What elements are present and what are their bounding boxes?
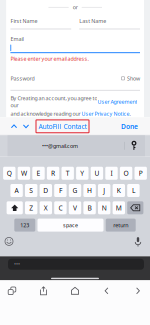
- staticText: D: [43, 186, 48, 195]
- staticText: or: [73, 4, 78, 11]
- staticText: O: [124, 169, 129, 178]
- staticText: Please enter your email address.: [10, 55, 88, 62]
- staticText: W: [21, 169, 27, 178]
- staticText: AutoFill Contact: [38, 122, 86, 131]
- staticText: Password: [10, 75, 34, 82]
- staticText: B: [88, 203, 92, 212]
- staticText: J: [103, 186, 105, 195]
- staticText: R: [51, 169, 55, 178]
- button[interactable]: Z: [25, 201, 37, 214]
- staticText: X: [44, 203, 48, 212]
- button[interactable]: Tabs: [1, 285, 23, 296]
- button[interactable]: Delete: [127, 201, 143, 214]
- button[interactable]: V: [69, 201, 81, 214]
- button[interactable]: Home: [64, 285, 86, 296]
- button[interactable]: L: [127, 184, 140, 197]
- button[interactable]: D: [40, 184, 52, 197]
- button[interactable]: User Privacy Notice: [81, 110, 129, 117]
- staticText: Email: [10, 35, 23, 42]
- staticText: User Agreement: [97, 98, 137, 105]
- button[interactable]: Share: [32, 285, 54, 296]
- button[interactable]: B: [83, 201, 96, 214]
- staticText: return: [113, 222, 128, 229]
- button[interactable]: T: [61, 167, 74, 180]
- button[interactable]: W: [18, 167, 30, 180]
- staticText: Last Name: [79, 17, 106, 24]
- staticText: T: [66, 169, 70, 178]
- staticText: G: [72, 186, 77, 195]
- button[interactable]: •••@gmail.com: [42, 142, 78, 149]
- button[interactable]: R: [47, 167, 59, 180]
- button[interactable]: G: [69, 184, 81, 197]
- button[interactable]: P: [134, 167, 147, 180]
- staticText: I: [110, 169, 112, 178]
- button[interactable]: Back: [95, 285, 117, 296]
- button[interactable]: E: [32, 167, 45, 180]
- staticText: and acknowledge reading our: [10, 110, 81, 117]
- staticText: V: [73, 203, 77, 212]
- button[interactable]: Forward: [127, 285, 149, 296]
- staticText: P: [139, 169, 143, 178]
- button[interactable]: N: [98, 201, 110, 214]
- staticText: Z: [29, 203, 33, 212]
- button[interactable]: User Agreement: [97, 98, 137, 105]
- button[interactable]: Y: [76, 167, 88, 180]
- staticText: space: [63, 222, 78, 229]
- staticText: K: [117, 186, 121, 195]
- button[interactable]: A: [10, 184, 23, 197]
- staticText: M: [116, 203, 122, 212]
- staticText: By Creating an account, you agree to our: [10, 95, 97, 109]
- button[interactable]: space: [37, 219, 103, 232]
- staticText: H: [87, 186, 92, 195]
- button[interactable]: Next field: [20, 119, 32, 133]
- staticText: First Name: [10, 17, 37, 24]
- staticText: Q: [7, 169, 12, 178]
- button[interactable]: Dictation: [131, 236, 145, 247]
- staticText: .: [129, 110, 130, 117]
- staticText: 123: [20, 222, 29, 229]
- staticText: S: [29, 186, 33, 195]
- button[interactable]: Shift: [7, 201, 23, 214]
- button[interactable]: S: [25, 184, 37, 197]
- button[interactable]: C: [54, 201, 67, 214]
- button[interactable]: F: [54, 184, 67, 197]
- button[interactable]: Q: [3, 167, 15, 180]
- staticText: L: [132, 186, 135, 195]
- button[interactable]: •••: [0, 259, 150, 270]
- button[interactable]: Previous field: [8, 119, 20, 133]
- button[interactable]: Emoji keyboard: [2, 236, 16, 247]
- button[interactable]: Show: [121, 75, 140, 82]
- staticText: Done: [121, 122, 138, 131]
- button[interactable]: Passwords: [131, 141, 137, 150]
- staticText: C: [58, 203, 62, 212]
- button[interactable]: 123: [14, 219, 35, 232]
- button[interactable]: X: [40, 201, 52, 214]
- staticText: Y: [80, 169, 84, 178]
- button[interactable]: K: [113, 184, 125, 197]
- staticText: E: [36, 169, 40, 178]
- button[interactable]: J: [98, 184, 110, 197]
- staticText: N: [102, 203, 107, 212]
- button[interactable]: return: [106, 219, 136, 232]
- staticText: A: [15, 186, 19, 195]
- staticText: Show: [127, 75, 140, 82]
- button[interactable]: M: [113, 201, 125, 214]
- button[interactable]: I: [105, 167, 118, 180]
- button[interactable]: O: [120, 167, 132, 180]
- staticText: •••: [14, 261, 20, 268]
- staticText: User Privacy Notice: [81, 110, 129, 117]
- staticText: F: [59, 186, 62, 195]
- button[interactable]: U: [91, 167, 103, 180]
- button[interactable]: Done: [121, 122, 150, 131]
- staticText: •••@gmail.com: [42, 142, 78, 149]
- button[interactable]: AutoFill Contact: [36, 120, 89, 133]
- button[interactable]: H: [83, 184, 96, 197]
- staticText: U: [94, 169, 99, 178]
